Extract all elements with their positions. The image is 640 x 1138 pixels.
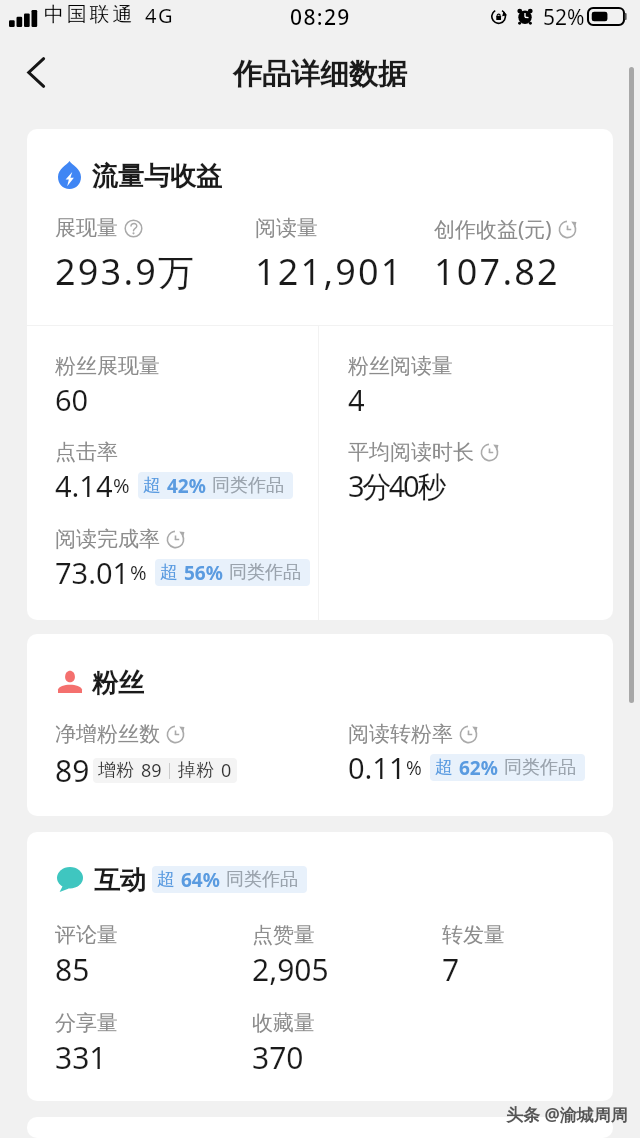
staticText: 阅读完成率 (55, 526, 160, 552)
staticText: 流量与收益 (92, 160, 222, 193)
staticText: 4.14 (55, 466, 113, 505)
staticText: 42% (167, 473, 206, 499)
staticText: 89 (55, 750, 90, 791)
staticText: 0.11 (348, 748, 406, 787)
staticText: 平均阅读时长 (348, 439, 474, 465)
staticText: 370 (252, 1037, 304, 1078)
staticText: 107.82 (434, 247, 560, 296)
staticText: 52% (543, 3, 585, 32)
staticText: 阅读转粉率 (348, 721, 453, 747)
button[interactable]: Back (12, 50, 60, 98)
staticText: 粉丝 (92, 667, 144, 700)
staticText: 展现量 (55, 215, 118, 241)
staticText: 粉丝阅读量 (348, 353, 453, 379)
staticText: 互动 (94, 864, 146, 897)
staticText: 超 (160, 561, 178, 584)
staticText: 同类作品 (229, 561, 301, 584)
staticText: 净增粉丝数 (55, 721, 160, 747)
staticText: 56% (184, 560, 223, 586)
staticText: 60 (55, 380, 89, 419)
staticText: 掉粉 (178, 759, 214, 782)
staticText: % (113, 472, 130, 499)
staticText: 4 (348, 380, 365, 419)
staticText: 转发量 (442, 922, 505, 948)
staticText: 4G (145, 2, 174, 29)
staticText: 08:29 (290, 3, 351, 32)
staticText: 超 (435, 756, 453, 779)
staticText: 64% (181, 867, 220, 893)
staticText: 超 (157, 868, 175, 891)
staticText: 同类作品 (226, 868, 298, 891)
staticText: 超 (143, 474, 161, 497)
staticText: 293.9万 (55, 247, 197, 296)
staticText: 121,901 (255, 247, 404, 296)
staticText: 85 (55, 949, 90, 990)
staticText: 同类作品 (212, 474, 284, 497)
staticText: 0 (221, 758, 232, 783)
staticText: 头条 @渝城周周 (506, 1103, 628, 1126)
staticText: 阅读量 (255, 215, 318, 241)
staticText: 89 (141, 758, 162, 783)
staticText: 331 (55, 1037, 107, 1078)
staticText: 中国联通 (44, 2, 136, 27)
staticText: 7 (442, 949, 460, 990)
staticText: 62% (459, 755, 498, 781)
staticText: 分享量 (55, 1010, 118, 1036)
staticText: 点赞量 (252, 922, 315, 948)
staticText: 同类作品 (504, 756, 576, 779)
staticText: 作品详细数据 (233, 56, 407, 93)
staticText: 点击率 (55, 439, 118, 465)
staticText: 粉丝展现量 (55, 353, 160, 379)
staticText: 73.01 (55, 553, 130, 592)
staticText: 2,905 (252, 949, 329, 990)
staticText: 评论量 (55, 922, 118, 948)
staticText: 3分40秒 (348, 466, 444, 506)
staticText: % (130, 559, 147, 586)
staticText: % (406, 755, 422, 781)
staticText: 创作收益(元) (434, 215, 552, 244)
staticText: 收藏量 (252, 1010, 315, 1036)
staticText: 增粉 (98, 759, 134, 782)
